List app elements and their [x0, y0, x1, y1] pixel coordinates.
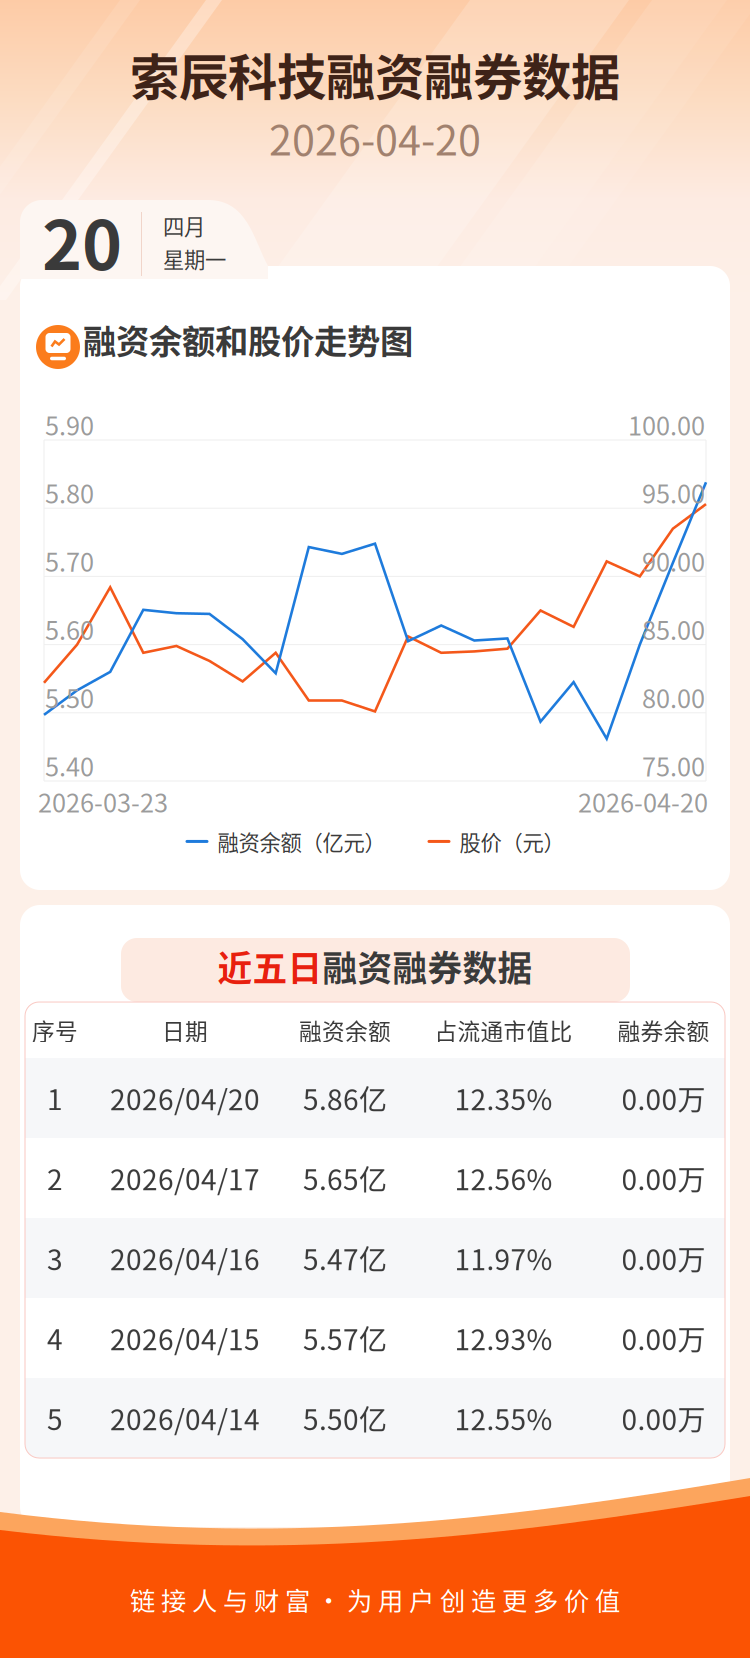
staticText: 2026/04/20	[110, 1078, 260, 1118]
staticText: 90.00	[642, 542, 705, 579]
staticText: 2026/04/15	[110, 1318, 260, 1358]
staticText: 12.56%	[454, 1158, 552, 1198]
staticText: 5.80	[45, 474, 94, 511]
staticText: 股价（元）	[459, 826, 564, 857]
staticText: 融券余额	[617, 1014, 709, 1046]
staticText: 75.00	[642, 747, 705, 784]
staticText: 融资融券数据	[322, 941, 532, 991]
staticText: 12.55%	[454, 1398, 552, 1438]
staticText: 融资余额	[299, 1014, 391, 1046]
staticText: 5.50亿	[303, 1398, 387, 1438]
staticText: 5.57亿	[303, 1318, 387, 1358]
staticText: 2026/04/16	[110, 1238, 260, 1278]
staticText: 0.00万	[621, 1078, 705, 1118]
staticText: 3	[47, 1238, 63, 1278]
staticText: 索辰科技融资融券数据	[130, 38, 620, 109]
staticText: 占流通市值比	[434, 1014, 572, 1046]
staticText: 近五日	[217, 941, 322, 991]
staticText: 4	[47, 1318, 63, 1358]
staticText: 80.00	[642, 679, 705, 715]
staticText: 5.65亿	[303, 1158, 387, 1198]
staticText: 序号	[32, 1014, 78, 1046]
staticText: 5.90	[45, 406, 94, 443]
staticText: 5.86亿	[303, 1078, 387, 1118]
staticText: 95.00	[642, 474, 705, 511]
staticText: 5.40	[45, 747, 94, 784]
staticText: 融资余额和股价走势图	[83, 315, 413, 363]
staticText: 融资余额（亿元）	[217, 826, 385, 857]
staticText: 2026-04-20	[269, 107, 481, 167]
staticText: 星期一	[163, 243, 226, 274]
staticText: 2026/04/17	[110, 1158, 260, 1198]
staticText: 0.00万	[621, 1158, 705, 1198]
staticText: 0.00万	[621, 1398, 705, 1438]
staticText: 5.70	[45, 542, 94, 579]
staticText: 四月	[163, 210, 205, 241]
staticText: 12.35%	[454, 1078, 552, 1118]
staticText: 12.93%	[454, 1318, 552, 1358]
staticText: 2026/04/14	[110, 1398, 260, 1438]
staticText: 85.00	[642, 611, 705, 647]
staticText: 11.97%	[454, 1238, 552, 1278]
staticText: 日期	[162, 1014, 208, 1046]
staticText: 1	[47, 1078, 63, 1118]
staticText: 5.50	[45, 679, 94, 715]
staticText: 5	[47, 1398, 63, 1438]
staticText: 链 接 人 与 财 富 · 为 用 户 创 造 更 多 价 值	[130, 1581, 620, 1618]
staticText: 2	[47, 1158, 63, 1198]
staticText: 5.60	[45, 611, 94, 647]
staticText: 0.00万	[621, 1238, 705, 1278]
staticText: 2026-03-23	[38, 783, 168, 820]
staticText: 2026-04-20	[578, 783, 708, 820]
staticText: 5.47亿	[303, 1238, 387, 1278]
staticText: 100.00	[628, 406, 705, 443]
staticText: 0.00万	[621, 1318, 705, 1358]
staticText: 20	[42, 191, 122, 289]
